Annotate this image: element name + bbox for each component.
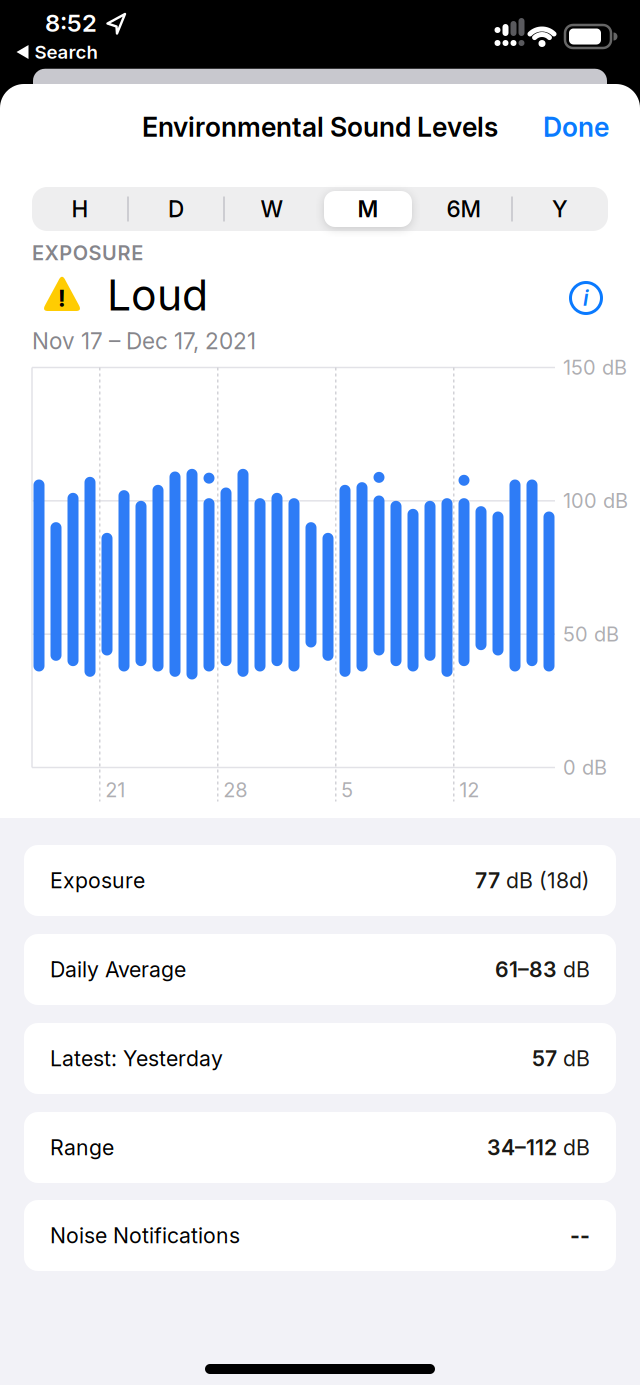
staticText: Search	[34, 41, 97, 63]
staticText: !	[58, 284, 66, 312]
staticText: H	[71, 196, 88, 222]
staticText: 57 dB	[532, 1046, 590, 1071]
staticText: 12	[459, 778, 479, 802]
staticText: 21	[105, 778, 125, 802]
button[interactable]: H	[34, 188, 126, 230]
button[interactable]: D	[130, 188, 222, 230]
button[interactable]: M	[322, 188, 414, 230]
staticText: 150 dB	[563, 356, 627, 379]
staticText: D	[168, 196, 184, 222]
staticText: --	[570, 1223, 590, 1248]
staticText: EXPOSURE	[32, 241, 143, 265]
button[interactable]: Back to Search	[16, 41, 97, 63]
staticText: Done	[543, 111, 609, 143]
staticText: 0 dB	[563, 756, 607, 779]
staticText: Environmental Sound Levels	[142, 111, 498, 143]
button[interactable]: 6M	[418, 188, 510, 230]
staticText: Exposure	[50, 868, 145, 893]
staticText: 34–112 dB	[487, 1135, 590, 1160]
staticText: 100 dB	[563, 489, 628, 513]
staticText: 6M	[446, 196, 481, 222]
staticText: Loud	[107, 270, 208, 320]
staticText: Nov 17 – Dec 17, 2021	[32, 328, 256, 354]
staticText: Range	[50, 1135, 114, 1160]
button[interactable]: Done	[535, 105, 617, 149]
staticText: 77 dB (18d)	[475, 868, 590, 893]
staticText: 61–83 dB	[495, 957, 590, 982]
staticText: i	[583, 285, 589, 311]
button[interactable]: Y	[514, 188, 606, 230]
staticText: W	[260, 196, 283, 222]
button[interactable]: Range	[24, 1112, 616, 1183]
staticText: Noise Notifications	[50, 1223, 240, 1248]
staticText: Daily Average	[50, 957, 186, 982]
staticText: Y	[552, 196, 568, 222]
staticText: Latest: Yesterday	[50, 1046, 223, 1071]
button[interactable]: Daily Average	[24, 934, 616, 1005]
staticText: 50 dB	[563, 622, 619, 646]
button[interactable]: W	[226, 188, 318, 230]
staticText: M	[357, 196, 378, 222]
button[interactable]: About Environmental Sound Levels	[566, 278, 606, 318]
button[interactable]: Noise Notifications	[24, 1200, 616, 1271]
staticText: 5	[341, 778, 353, 802]
button[interactable]: Latest: Yesterday	[24, 1023, 616, 1094]
staticText: 8:52	[45, 9, 97, 37]
staticText: 28	[223, 778, 247, 802]
button[interactable]: Exposure	[24, 845, 616, 916]
